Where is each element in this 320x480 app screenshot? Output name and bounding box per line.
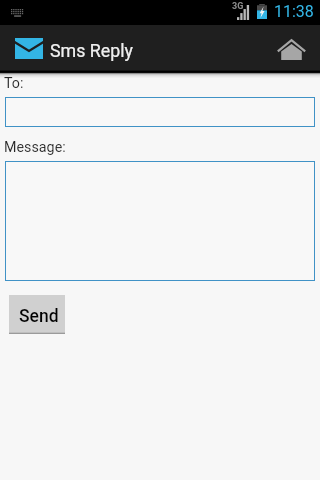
button[interactable]: Send	[9, 295, 65, 334]
staticText: 11:38	[274, 2, 314, 21]
staticText: Send	[19, 306, 59, 327]
staticText: Message:	[4, 139, 66, 156]
staticText: Sms Reply	[50, 40, 133, 61]
button[interactable]: Home	[270, 30, 314, 66]
staticText: To:	[4, 75, 24, 92]
button[interactable]	[5, 161, 315, 281]
staticText: 3G	[232, 1, 244, 12]
button[interactable]	[5, 97, 315, 127]
